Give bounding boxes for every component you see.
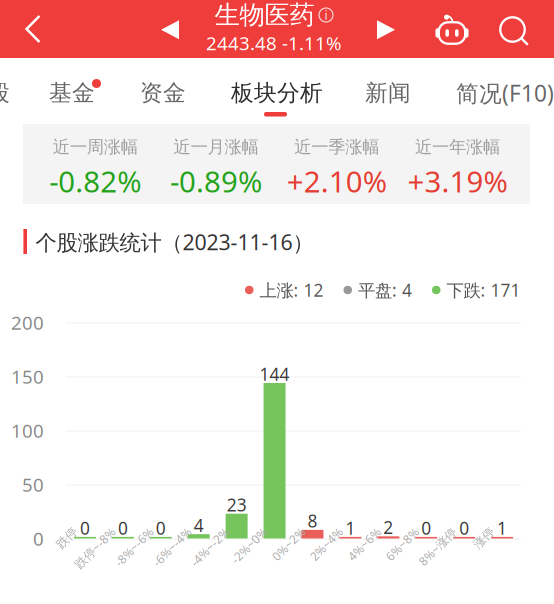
staticText: i: [324, 7, 327, 23]
staticText: 6%~8%: [386, 547, 427, 563]
staticText: 0: [33, 526, 44, 551]
staticText: 23: [227, 493, 247, 516]
button[interactable]: Next sector: [364, 1, 408, 59]
staticText: 下跌: 171: [446, 278, 520, 301]
staticText: 200: [11, 310, 44, 335]
staticText: 150: [11, 364, 44, 389]
staticText: 50: [22, 472, 44, 497]
staticText: -0.82%: [49, 161, 141, 200]
button[interactable]: 板块分析: [231, 80, 323, 122]
staticText: 4%~6%: [348, 547, 389, 563]
staticText: 8%~涨停: [417, 547, 465, 563]
staticText: 0%~2%: [272, 547, 313, 563]
button[interactable]: 新闻: [365, 80, 411, 106]
staticText: 平盘: 4: [358, 278, 412, 301]
staticText: 2%~4%: [310, 547, 351, 563]
staticText: 0: [80, 516, 90, 539]
staticText: -8%~-6%: [113, 547, 162, 563]
staticText: 100: [11, 418, 44, 443]
staticText: 1: [497, 516, 507, 539]
staticText: 涨停: [479, 548, 503, 562]
staticText: -6%~-4%: [151, 547, 200, 563]
staticText: 资金: [140, 79, 186, 107]
button[interactable]: 资金: [140, 80, 186, 106]
staticText: 4: [194, 514, 204, 537]
button[interactable]: AI assistant: [425, 4, 479, 62]
staticText: 基金: [49, 79, 95, 107]
staticText: 8: [307, 509, 317, 532]
staticText: 144: [259, 362, 289, 385]
staticText: 跌停: [62, 548, 86, 562]
staticText: 上涨: 12: [259, 278, 323, 301]
staticText: 0: [156, 516, 166, 539]
button[interactable]: Back: [4, 0, 62, 58]
staticText: 板块分析: [231, 79, 323, 107]
button[interactable]: Search: [487, 2, 541, 60]
staticText: -2%~0%: [230, 547, 275, 563]
staticText: 1: [345, 516, 355, 539]
staticText: -4%~-2%: [189, 547, 238, 563]
staticText: 股: [0, 79, 10, 107]
button[interactable]: 简况(F10): [456, 80, 554, 106]
staticText: 近一年涨幅: [415, 136, 500, 158]
staticText: 近一周涨幅: [53, 136, 138, 158]
staticText: 0: [459, 516, 469, 539]
staticText: +3.19%: [407, 161, 507, 200]
staticText: 个股涨跌统计（2023-11-16）: [35, 228, 313, 256]
staticText: 简况(F10): [456, 78, 554, 108]
staticText: 0: [118, 516, 128, 539]
staticText: 生物医药: [214, 0, 314, 30]
staticText: 近一月涨幅: [173, 136, 258, 158]
staticText: -0.89%: [170, 161, 262, 200]
staticText: +2.10%: [287, 161, 387, 200]
button[interactable]: 基金: [49, 80, 104, 106]
staticText: 近一季涨幅: [294, 136, 379, 158]
button[interactable]: Previous sector: [148, 1, 192, 59]
staticText: 新闻: [365, 79, 411, 107]
button[interactable]: 股: [0, 80, 11, 106]
staticText: 2443.48 -1.11%: [206, 31, 342, 55]
staticText: 0: [421, 516, 431, 539]
staticText: 跌停~-8%: [72, 547, 124, 563]
staticText: 2: [383, 516, 393, 539]
